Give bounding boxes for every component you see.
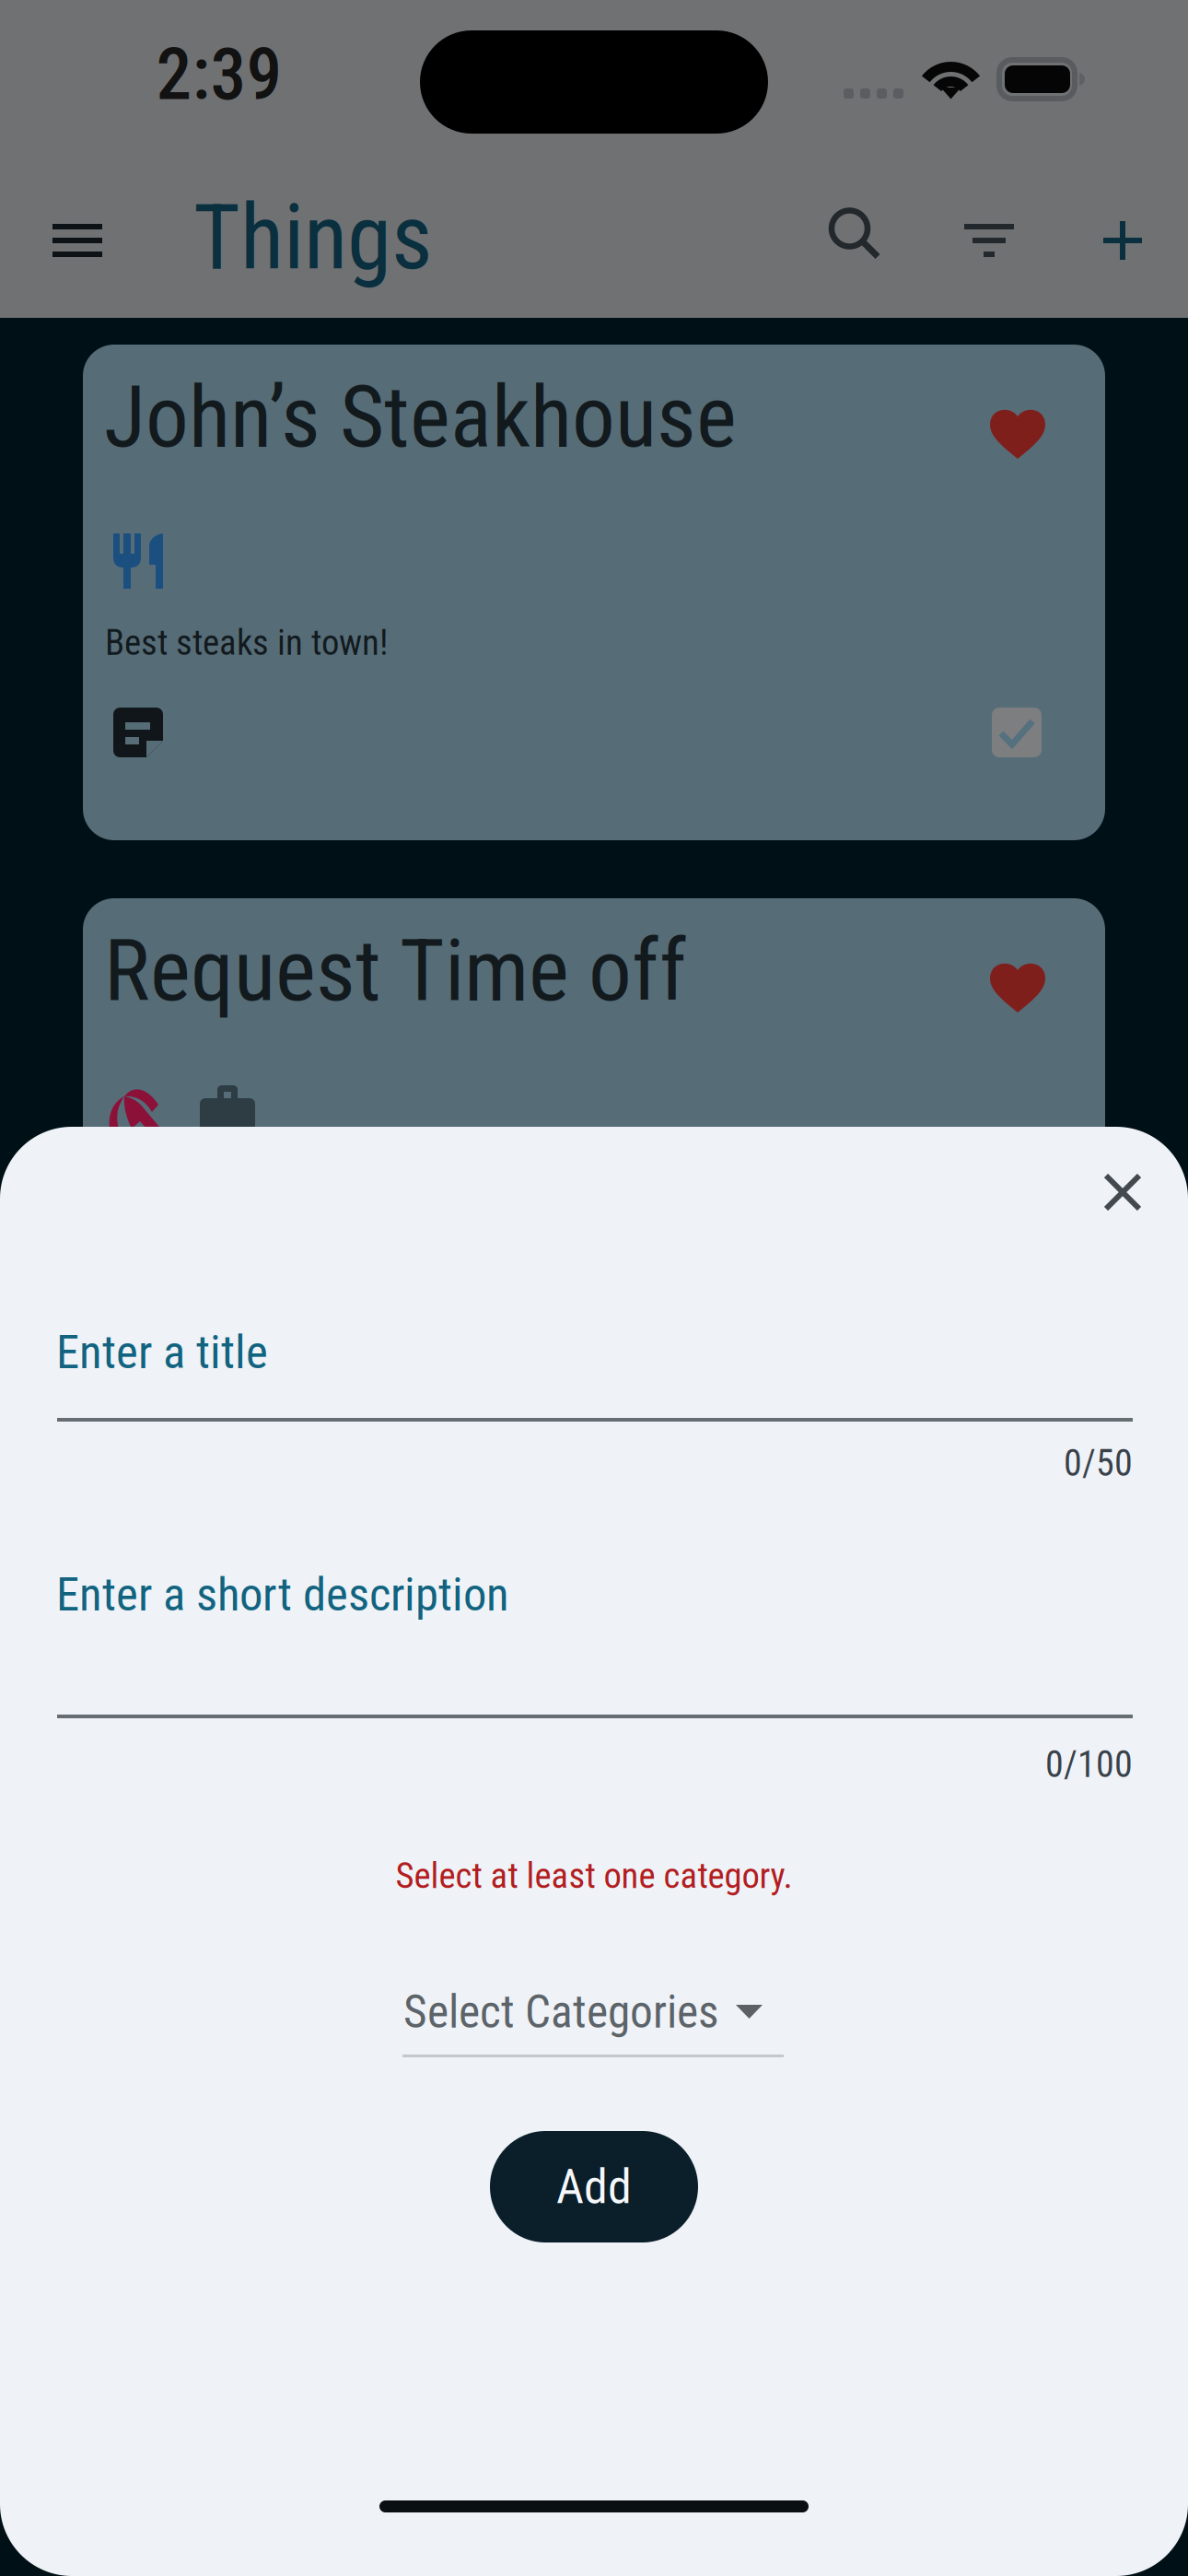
button[interactable]: Filter: [938, 190, 1040, 291]
button[interactable]: Request Time off: [83, 898, 1105, 1394]
button[interactable]: Search: [805, 183, 906, 285]
button[interactable]: Menu: [27, 190, 128, 291]
staticText: Enter a short description: [56, 1567, 509, 1622]
staticText: Request Time off: [104, 920, 687, 1021]
staticText: Things: [193, 185, 432, 290]
staticText: 0/100: [1045, 1743, 1133, 1786]
staticText: 0/50: [1064, 1441, 1133, 1485]
staticText: 2:39: [156, 33, 282, 116]
staticText: Enter a title: [56, 1325, 268, 1380]
staticText: Select Categories: [403, 1985, 718, 2039]
staticText: Best steaks in town!: [105, 622, 389, 664]
staticText: John’s Steakhouse: [104, 367, 737, 467]
button[interactable]: Select Categories: [402, 1989, 784, 2070]
button[interactable]: Add: [490, 2131, 698, 2242]
button[interactable]: Add item: [1072, 190, 1173, 291]
staticText: Select at least one category.: [396, 1855, 792, 1897]
button[interactable]: Close: [1067, 1137, 1178, 1247]
staticText: Add: [556, 2159, 632, 2215]
button[interactable]: John’s Steakhouse: [83, 345, 1105, 840]
